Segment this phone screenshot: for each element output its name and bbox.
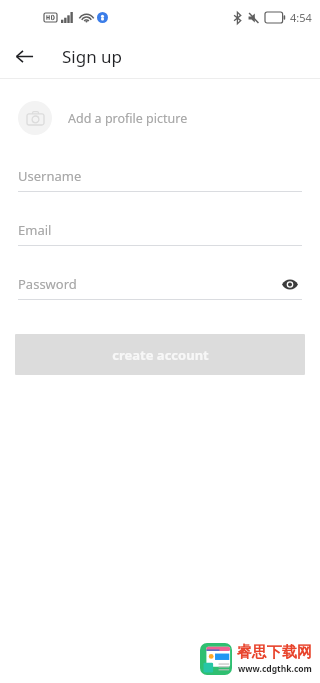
staticText: Email (18, 221, 52, 239)
staticText: 睿思下载网 (237, 643, 312, 662)
staticText: www.cdgthk.com (238, 663, 312, 675)
button[interactable]: Back (8, 40, 40, 72)
staticText: 4:54 (290, 10, 312, 25)
button[interactable]: create account (15, 334, 305, 375)
button[interactable]: Email (18, 219, 302, 246)
staticText: create account (112, 346, 209, 364)
button[interactable]: Show password (278, 273, 302, 295)
staticText: Username (18, 167, 82, 185)
button[interactable]: Password (18, 273, 302, 300)
staticText: Password (18, 275, 77, 293)
button[interactable]: Username (18, 165, 302, 192)
button[interactable]: Add a profile picture (0, 93, 320, 143)
staticText: Sign up (62, 45, 123, 68)
staticText: Add a profile picture (68, 110, 188, 127)
